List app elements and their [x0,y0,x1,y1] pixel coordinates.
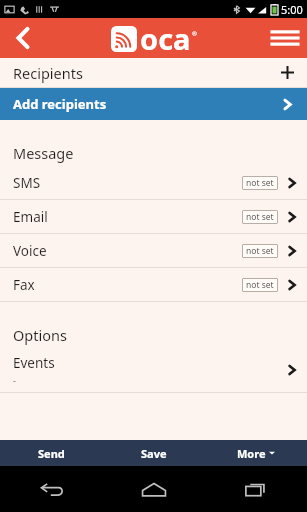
staticText: 5:00 [281,2,303,17]
button[interactable]: Email [0,200,307,233]
staticText: Email [13,208,48,226]
staticText: oca [140,19,191,58]
button[interactable]: SMS [0,166,307,199]
button[interactable]: Menu [263,18,307,58]
button[interactable]: Events [0,348,307,392]
button[interactable]: More [205,440,307,466]
staticText: Voice [13,242,47,260]
staticText: Send [38,446,65,461]
button[interactable]: Recent apps [205,466,307,512]
staticText: Events [13,354,55,372]
button[interactable]: Save [103,440,205,466]
staticText: Options [13,325,67,345]
button[interactable]: Back [0,18,46,58]
staticText: not set [246,245,274,257]
button[interactable]: Voice [0,234,307,267]
staticText: ® [192,30,197,38]
staticText: not set [246,211,274,223]
staticText: Message [13,143,74,163]
staticText: Save [141,446,167,461]
staticText: - [13,374,16,386]
staticText: Add recipients [13,95,107,113]
staticText: More [237,446,266,461]
staticText: Fax [13,276,35,294]
button[interactable]: Recipients [0,58,307,87]
staticText: SMS [13,174,41,192]
button[interactable]: Add recipients [0,88,307,120]
staticText: not set [246,177,274,189]
button[interactable]: Send [0,440,103,466]
button[interactable]: Back [0,466,103,512]
button[interactable]: Fax [0,268,307,301]
staticText: not set [246,279,274,291]
staticText: Recipients [13,63,83,83]
button[interactable]: Home [103,466,205,512]
